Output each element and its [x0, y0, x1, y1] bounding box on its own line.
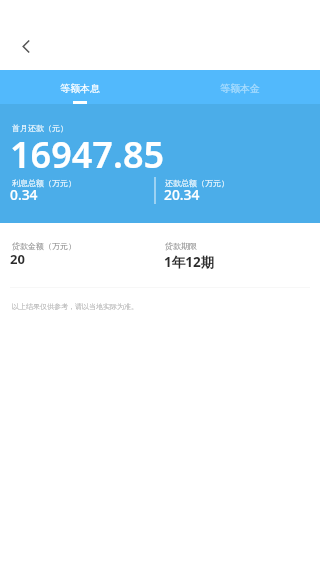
staticText: 还款总额（万元）	[165, 178, 229, 188]
staticText: 利息总额（万元）	[12, 178, 76, 188]
staticText: 20	[10, 250, 25, 268]
button[interactable]: 等额本息	[0, 70, 160, 104]
button[interactable]: Back	[6, 28, 42, 64]
staticText: 贷款期限	[165, 241, 197, 251]
button[interactable]: 等额本金	[160, 70, 320, 104]
staticText: 等额本息	[60, 82, 100, 95]
staticText: 16947.85	[10, 130, 165, 179]
staticText: 1年12期	[164, 253, 215, 271]
staticText: 等额本金	[220, 82, 260, 95]
staticText: 以上结果仅供参考，请以当地实际为准。	[12, 302, 138, 311]
staticText: 0.34	[10, 185, 38, 204]
staticText: 贷款金额（万元）	[12, 241, 76, 251]
staticText: 20.34	[164, 185, 200, 204]
staticText: 首月还款（元）	[12, 123, 68, 133]
